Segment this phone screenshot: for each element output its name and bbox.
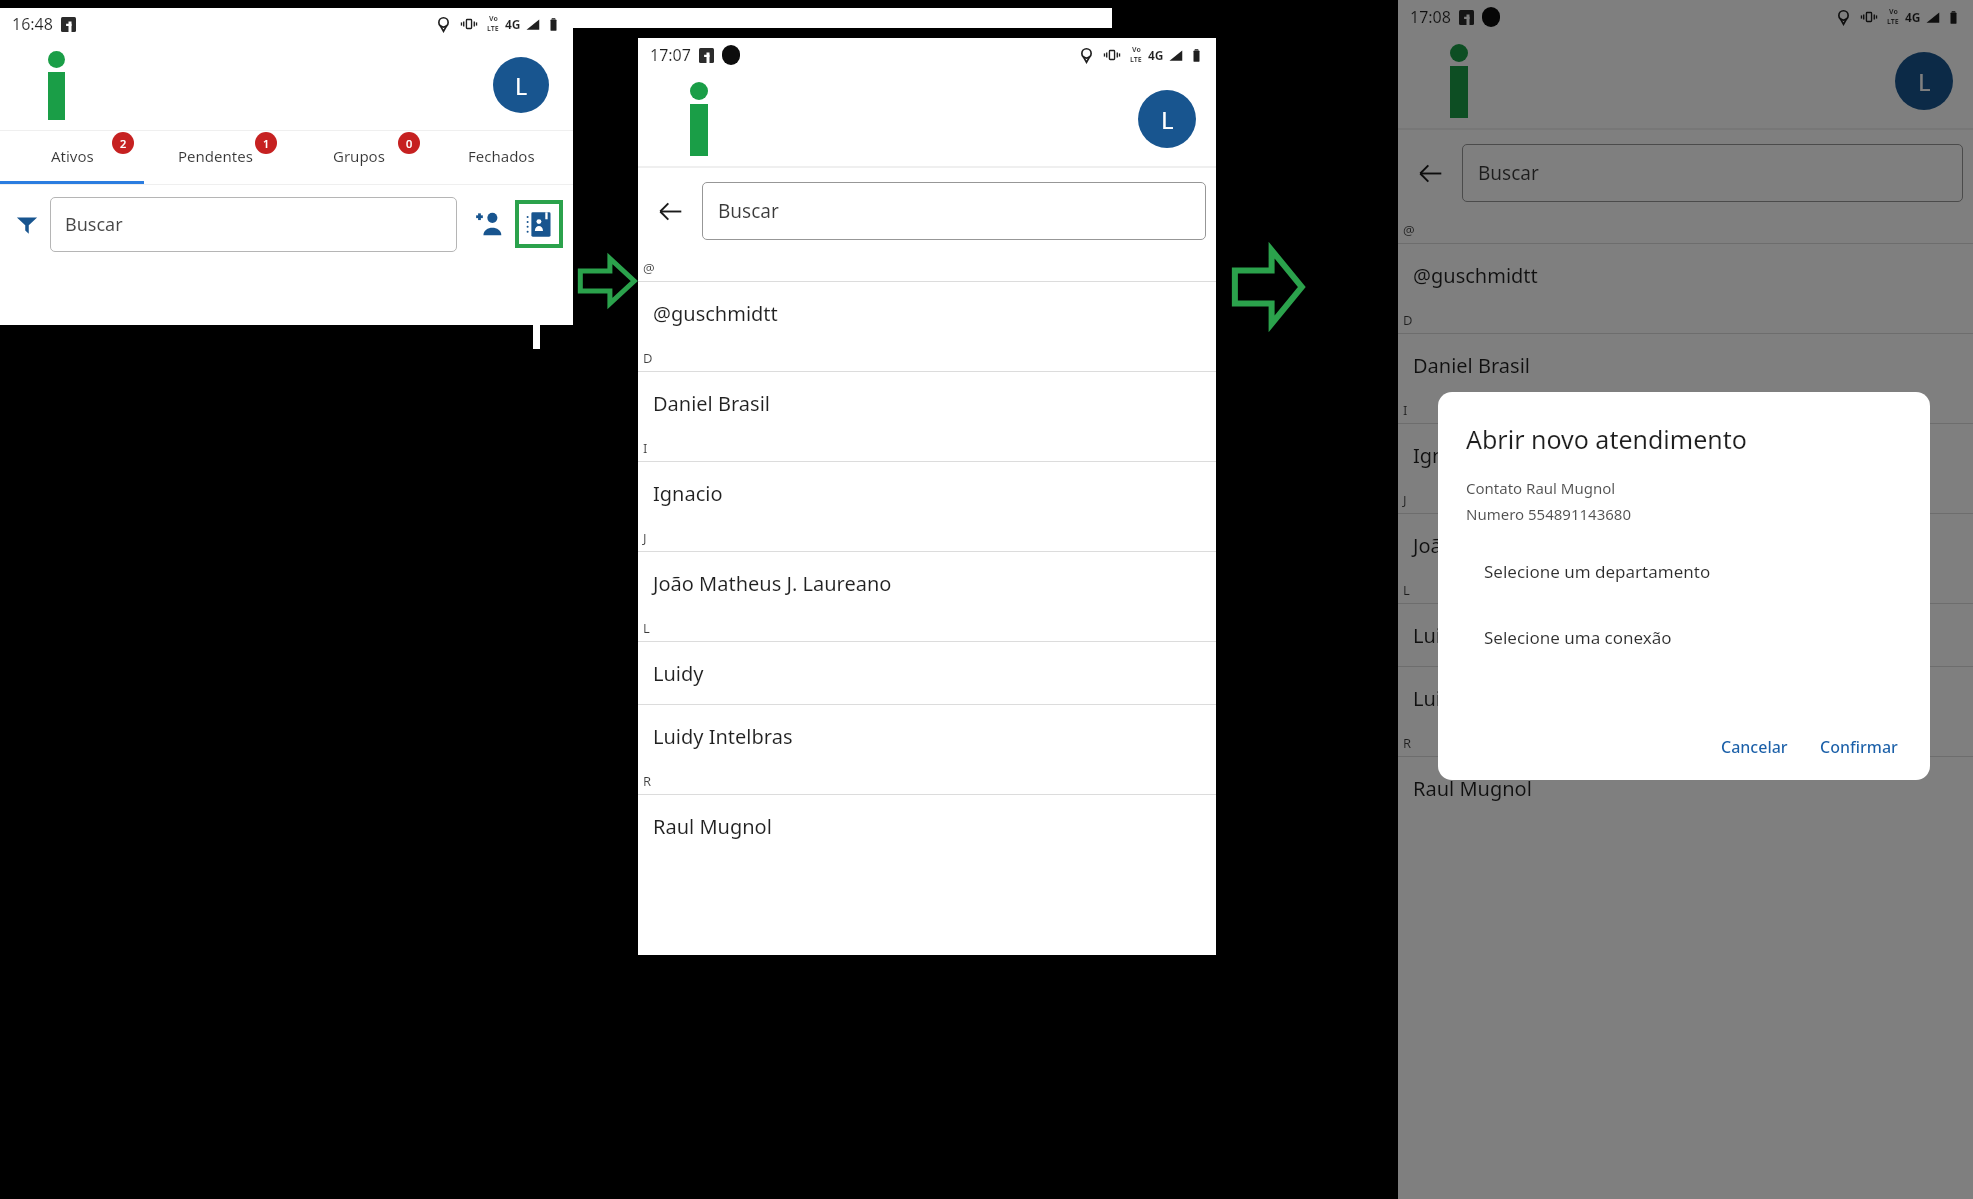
staticText: Numero 554891143680: [1466, 504, 1631, 524]
button[interactable]: Perfil do usuário: [1895, 52, 1953, 110]
staticText: 0: [406, 136, 413, 151]
staticText: L: [515, 70, 528, 101]
staticText: LTE: [1130, 55, 1142, 65]
staticText: Luidy Intelbras: [653, 723, 793, 750]
staticText: 1: [263, 136, 270, 151]
staticText: Buscar: [1478, 160, 1539, 186]
staticText: D: [643, 349, 653, 367]
staticText: Buscar: [65, 212, 123, 237]
button[interactable]: Grupos: [287, 131, 430, 184]
button[interactable]: Luidy Intelbras: [1398, 667, 1973, 729]
staticText: Abrir novo atendimento: [1466, 422, 1747, 456]
staticText: D: [1403, 311, 1413, 329]
staticText: 17:07: [650, 44, 691, 66]
staticText: L: [1161, 103, 1174, 136]
button[interactable]: Raul Mugnol: [1398, 757, 1973, 819]
staticText: 4G: [1905, 9, 1921, 25]
staticText: Raul Mugnol: [1413, 775, 1532, 802]
button[interactable]: Selecione um departamento: [1466, 552, 1910, 590]
button[interactable]: Raul Mugnol: [638, 795, 1216, 857]
button[interactable]: Selecione uma conexão: [1466, 618, 1910, 656]
button[interactable]: Adicionar contato: [469, 204, 509, 244]
staticText: 4G: [1148, 47, 1164, 63]
staticText: Fechados: [468, 146, 535, 166]
staticText: R: [1403, 734, 1412, 752]
button[interactable]: Ignacio: [638, 462, 1216, 524]
staticText: João Matheus J. Laureano: [1413, 532, 1652, 559]
staticText: 17:08: [1410, 6, 1451, 28]
button[interactable]: Pendentes: [144, 131, 287, 184]
button[interactable]: Luidy Intelbras: [638, 705, 1216, 767]
button[interactable]: Perfil do usuário: [1138, 90, 1196, 148]
staticText: L: [643, 619, 650, 637]
staticText: 16:48: [12, 13, 53, 35]
button[interactable]: Voltar: [1412, 155, 1448, 191]
button[interactable]: @guschmidtt: [1398, 244, 1973, 306]
button[interactable]: João Matheus J. Laureano: [1398, 514, 1973, 576]
staticText: Luidy: [1413, 622, 1464, 649]
button[interactable]: Buscar: [1462, 144, 1963, 202]
staticText: Ignacio: [1413, 442, 1483, 469]
staticText: R: [643, 772, 652, 790]
staticText: Cancelar: [1721, 736, 1788, 758]
staticText: Luidy Intelbras: [1413, 685, 1553, 712]
button[interactable]: Ativos: [0, 131, 144, 184]
button[interactable]: Buscar: [702, 182, 1206, 240]
staticText: 4G: [505, 16, 521, 32]
staticText: Vo: [1132, 45, 1141, 55]
button[interactable]: Ignacio: [1398, 424, 1973, 486]
staticText: 2: [120, 136, 127, 151]
button[interactable]: Filtrar: [10, 207, 44, 241]
button[interactable]: Luidy: [1398, 604, 1973, 666]
staticText: Luidy: [653, 660, 704, 687]
button[interactable]: Agenda de contatos: [515, 200, 563, 248]
button[interactable]: Confirmar: [1808, 728, 1910, 766]
staticText: LTE: [1887, 17, 1899, 27]
button[interactable]: Fechados: [430, 131, 573, 184]
button[interactable]: @guschmidtt: [638, 282, 1216, 344]
staticText: L: [1403, 581, 1410, 599]
staticText: Pendentes: [178, 146, 253, 166]
staticText: Selecione uma conexão: [1484, 626, 1672, 649]
staticText: João Matheus J. Laureano: [653, 570, 892, 597]
button[interactable]: João Matheus J. Laureano: [638, 552, 1216, 614]
button[interactable]: Buscar: [50, 197, 457, 252]
staticText: Raul Mugnol: [653, 813, 772, 840]
staticText: I: [1403, 401, 1408, 419]
button[interactable]: Luidy: [638, 642, 1216, 704]
button[interactable]: Daniel Brasil: [1398, 334, 1973, 396]
staticText: @: [643, 259, 655, 277]
staticText: Ativos: [51, 146, 94, 166]
staticText: Vo: [489, 14, 498, 24]
staticText: @: [1403, 221, 1415, 239]
staticText: Confirmar: [1820, 736, 1898, 758]
staticText: Selecione um departamento: [1484, 560, 1711, 583]
staticText: @guschmidtt: [653, 300, 778, 327]
button[interactable]: Voltar: [652, 193, 688, 229]
staticText: @guschmidtt: [1413, 262, 1538, 289]
staticText: L: [1918, 65, 1931, 98]
staticText: Grupos: [333, 146, 385, 166]
button[interactable]: Perfil do usuário: [493, 57, 549, 113]
button[interactable]: Cancelar: [1709, 728, 1800, 766]
staticText: J: [643, 529, 647, 547]
staticText: Ignacio: [653, 480, 723, 507]
staticText: LTE: [487, 24, 499, 34]
staticText: Daniel Brasil: [653, 390, 770, 417]
staticText: I: [643, 439, 648, 457]
staticText: Vo: [1889, 7, 1898, 17]
staticText: Buscar: [718, 198, 779, 224]
button[interactable]: Daniel Brasil: [638, 372, 1216, 434]
staticText: Contato Raul Mugnol: [1466, 478, 1616, 498]
staticText: J: [1403, 491, 1407, 509]
staticText: Daniel Brasil: [1413, 352, 1530, 379]
